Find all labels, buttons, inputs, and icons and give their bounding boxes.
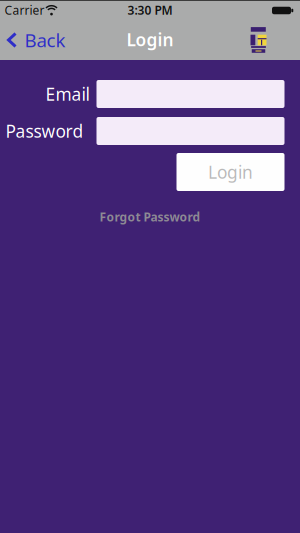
staticText: Forgot Password (99, 209, 200, 225)
button[interactable] (96, 80, 284, 108)
staticText: Password (5, 119, 83, 142)
button[interactable]: Back (6, 28, 65, 52)
button[interactable] (96, 117, 284, 145)
staticText: 3:30 PM (127, 2, 172, 18)
staticText: Carrier (4, 2, 44, 18)
button[interactable]: Login (176, 153, 284, 191)
staticText: Email (45, 82, 89, 105)
staticText: Login (208, 160, 253, 183)
button[interactable]: Forgot Password (99, 209, 200, 225)
staticText: Login (126, 28, 173, 51)
staticText: Back (24, 28, 65, 52)
